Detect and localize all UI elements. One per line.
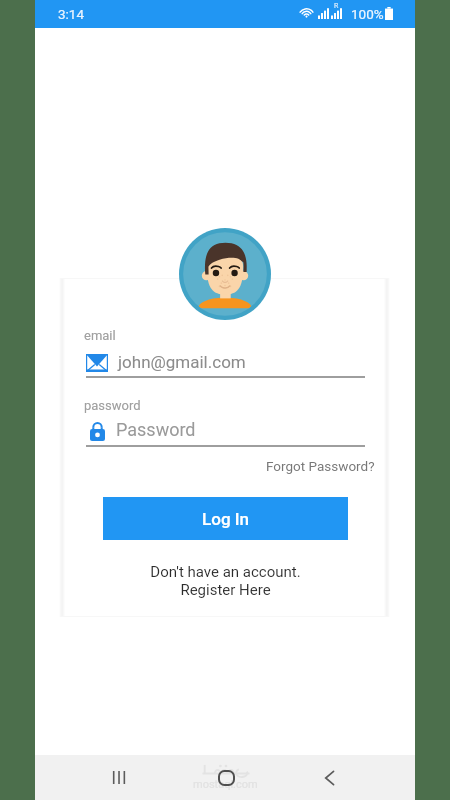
button[interactable]: Don't have an account. Register Here [35,563,415,599]
staticText: Password [116,419,196,440]
button[interactable]: Forgot Password? [266,458,375,474]
staticText: password [84,398,141,413]
staticText: 100% [351,6,384,22]
staticText: Don't have an account. Register Here [150,563,301,599]
button[interactable]: Recent apps [98,756,141,799]
staticText: Log In [202,509,250,529]
staticText: 3:14 [58,6,85,22]
staticText: john@gmail.com [118,352,246,372]
staticText: R [334,2,339,10]
staticText: email [84,328,116,343]
button[interactable]: Log In [103,497,348,540]
button[interactable]: Home [204,755,249,800]
staticText: mostaql.com [193,778,258,791]
staticText: Forgot Password? [266,458,375,474]
button[interactable]: Back [308,756,351,799]
